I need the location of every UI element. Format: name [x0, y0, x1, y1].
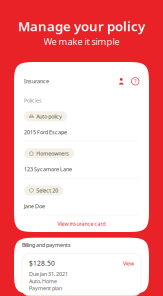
staticText: Billing and payments	[22, 241, 71, 249]
staticText: ?	[134, 78, 136, 85]
staticText: Due Jan 31, 2021	[29, 270, 68, 278]
staticText: Homeowners	[36, 150, 69, 157]
staticText: Manage your policy	[18, 17, 145, 35]
staticText: Jane Doe	[24, 203, 45, 210]
button[interactable]: Help	[124, 77, 139, 85]
button[interactable]: Select 20	[24, 185, 139, 215]
button[interactable]: Account	[118, 78, 124, 84]
staticText: Payment plan	[29, 285, 62, 292]
staticText: Insurance	[24, 78, 49, 85]
staticText: We make it simple	[43, 35, 119, 48]
staticText: $128.50	[29, 259, 55, 268]
staticText: Auto, Home	[29, 278, 57, 285]
staticText: 2015 Ford Escape	[24, 129, 67, 136]
button[interactable]: $128.50	[22, 254, 141, 296]
button[interactable]: View insurance card	[24, 215, 139, 232]
staticText: View	[123, 260, 134, 267]
staticText: 123 Sycamore Lane	[24, 166, 72, 173]
staticText: Auto policy	[36, 113, 62, 120]
staticText: View insurance card	[57, 220, 105, 227]
button[interactable]: Auto policy	[24, 111, 139, 141]
button[interactable]: Homeowners	[24, 148, 139, 178]
staticText: Select 20	[36, 187, 58, 194]
staticText: Policies	[24, 97, 42, 104]
